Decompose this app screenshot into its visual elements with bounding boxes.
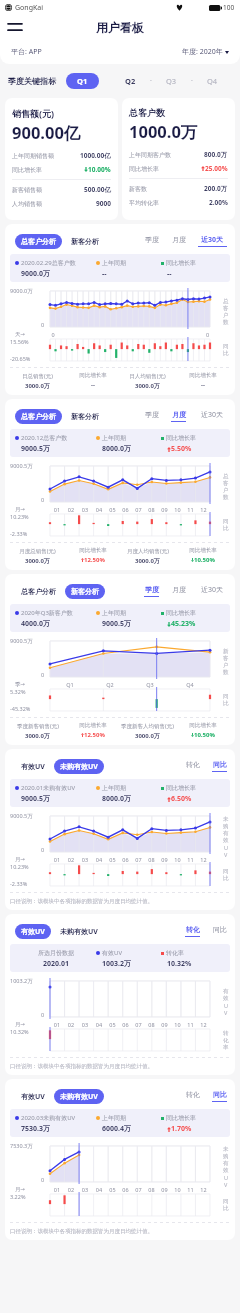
staticText: 4000.0万 (21, 619, 50, 629)
button[interactable]: 未购有效UV (54, 924, 104, 939)
staticText: Q4 (170, 681, 210, 688)
staticText: 同比增长率 (189, 372, 217, 379)
button[interactable]: 近30天 (198, 409, 227, 424)
staticText: 6000.4万 (102, 1124, 131, 1134)
staticText: 3000.0万 (25, 382, 50, 390)
button[interactable]: 同比 (212, 924, 227, 939)
button[interactable]: 未购有效UV (54, 759, 104, 774)
staticText: 同比 (213, 1090, 227, 1099)
button[interactable]: 同比 (212, 1089, 227, 1104)
staticText: 8000.0万 (102, 794, 131, 804)
staticText: 5.50% (171, 444, 192, 454)
staticText: 06 (119, 856, 132, 863)
staticText: 0 (41, 846, 45, 853)
staticText: 10.00% (88, 165, 111, 174)
button[interactable]: 同比 (212, 759, 227, 774)
staticText: 10.23% (10, 513, 29, 520)
staticText: 转化率 (166, 949, 184, 957)
staticText: 10.50% (194, 731, 215, 739)
staticText: 同 (223, 343, 229, 350)
staticText: 07 (132, 1021, 145, 1028)
button[interactable]: 近30天 (198, 234, 227, 249)
button[interactable]: 月度 (171, 234, 186, 249)
button[interactable]: 有效UV (15, 759, 51, 774)
staticText: 1003.2万 (10, 977, 33, 985)
staticText: 同 (223, 518, 229, 525)
staticText: 07 (132, 1186, 145, 1193)
button[interactable]: 总客户数 (122, 98, 235, 220)
staticText: 1000.00亿 (80, 151, 111, 160)
staticText: 新客数 (129, 185, 147, 193)
button[interactable]: 总客户分析 (15, 234, 62, 249)
button[interactable]: Q4 (207, 76, 218, 86)
button[interactable]: 新客分析 (65, 409, 105, 424)
button[interactable]: 总客户分析 (15, 409, 62, 424)
button[interactable]: Menu (6, 18, 24, 36)
button[interactable]: 月度 (171, 584, 186, 599)
staticText: 有效UV (21, 762, 45, 771)
staticText: 有效UV (21, 927, 45, 936)
staticText: 06 (119, 506, 132, 513)
staticText: 购 (223, 823, 229, 830)
button[interactable]: 季度 (144, 584, 159, 599)
button[interactable]: 未购有效UV (54, 1089, 104, 1104)
staticText: 1003.2万 (102, 959, 131, 969)
staticText: 季度 (145, 410, 159, 419)
button[interactable]: 新客分析 (65, 234, 105, 249)
staticText: V (224, 851, 228, 858)
button[interactable]: 转化 (185, 759, 200, 774)
button[interactable]: 近30天 (198, 584, 227, 599)
button[interactable]: 总客户分析 (15, 584, 62, 599)
staticText: 近30天 (201, 585, 224, 595)
staticText: 2020.02.29总客户数 (21, 259, 76, 267)
staticText: 05 (106, 506, 119, 513)
staticText: 7530.3万 (21, 1124, 50, 1134)
staticText: 06 (119, 1186, 132, 1193)
staticText: 用户看板 (96, 20, 144, 35)
staticText: 07 (132, 856, 145, 863)
button[interactable]: 月度 (171, 409, 186, 424)
staticText: 3000.0万 (135, 557, 160, 565)
staticText: 5.32% (10, 688, 26, 695)
staticText: Q1 (77, 76, 88, 86)
staticText: 月度总销售(元) (19, 547, 56, 555)
staticText: 01 (50, 1021, 64, 1028)
button[interactable]: Q2 (125, 76, 136, 86)
staticText: 未 (223, 1146, 229, 1153)
button[interactable]: 年度: 2020年 (182, 47, 229, 57)
staticText: 同比增长率 (79, 722, 107, 729)
button[interactable]: 转化 (185, 924, 200, 939)
button[interactable]: 新客分析 (65, 584, 105, 599)
button[interactable]: 季度 (144, 234, 159, 249)
staticText: 03 (78, 1186, 92, 1193)
staticText: 年度: 2020年 (182, 47, 223, 57)
staticText: 10 (171, 1186, 184, 1193)
staticText: 05 (106, 1186, 119, 1193)
button[interactable]: 有效UV (15, 924, 51, 939)
button[interactable]: Q1 (66, 73, 99, 89)
button[interactable]: 转化 (185, 1089, 200, 1104)
staticText: 12 (197, 506, 210, 513)
staticText: · (191, 76, 193, 86)
button[interactable]: Q3 (166, 76, 177, 86)
staticText: 有 (223, 830, 229, 837)
staticText: 02 (64, 856, 78, 863)
button[interactable]: 平台: APP (11, 47, 42, 57)
staticText: 09 (158, 1186, 171, 1193)
staticText: 3000.0万 (135, 732, 160, 740)
staticText: 总客户分析 (21, 237, 56, 246)
staticText: 转化 (186, 1090, 200, 1099)
staticText: 季度新客人均销售(元) (121, 722, 174, 730)
staticText: 率 (223, 1044, 229, 1051)
staticText: 09 (158, 1021, 171, 1028)
staticText: 月→ (15, 856, 50, 863)
staticText: GongKai (15, 3, 44, 13)
staticText: 比 (223, 350, 229, 357)
button[interactable]: 有效UV (15, 1089, 51, 1104)
button[interactable]: 销售额(元) (5, 98, 118, 220)
button[interactable]: 季度 (144, 409, 159, 424)
